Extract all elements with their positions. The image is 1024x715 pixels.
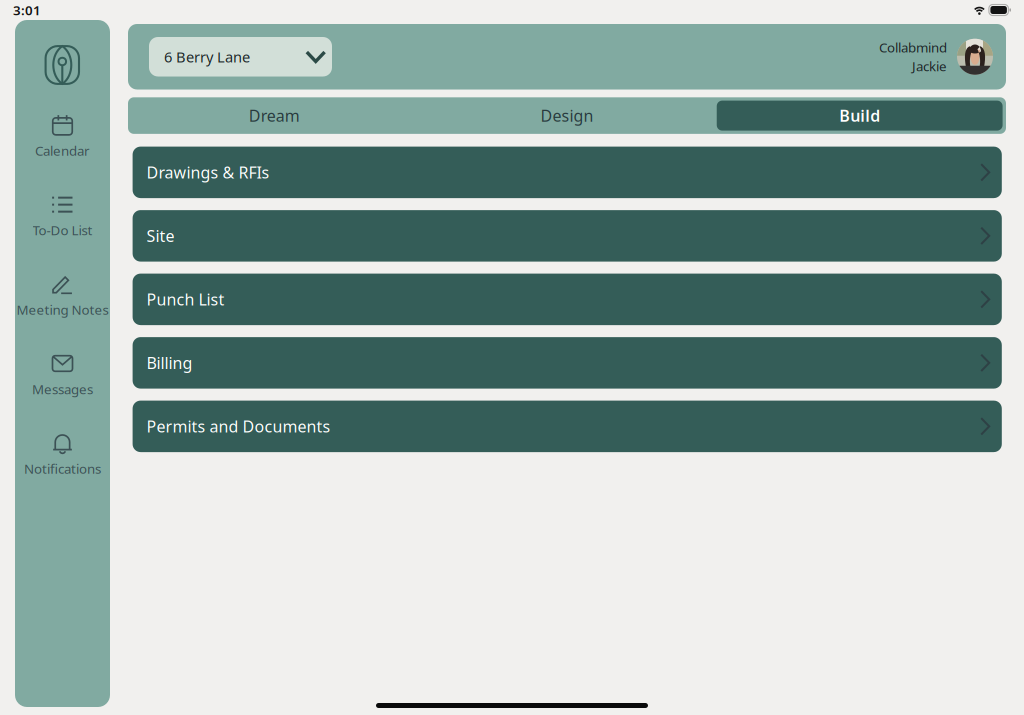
- button[interactable]: 6 Berry Lane: [149, 37, 332, 76]
- staticText: Design: [540, 105, 593, 126]
- button[interactable]: Permits and Documents: [133, 401, 1002, 452]
- button[interactable]: Collabmind: [879, 38, 993, 75]
- button[interactable]: Punch List: [133, 274, 1002, 325]
- staticText: Billing: [147, 352, 193, 373]
- button[interactable]: Design: [421, 97, 713, 134]
- button[interactable]: To-Do List: [15, 190, 110, 270]
- button[interactable]: Calendar: [15, 111, 110, 190]
- staticText: Build: [839, 105, 880, 126]
- staticText: Messages: [32, 380, 93, 398]
- staticText: Punch List: [147, 289, 225, 310]
- button[interactable]: Billing: [133, 337, 1002, 389]
- button[interactable]: Build: [713, 101, 1006, 131]
- staticText: Permits and Documents: [147, 416, 331, 437]
- button[interactable]: Messages: [15, 349, 110, 429]
- staticText: To-Do List: [32, 221, 92, 239]
- staticText: Collabmind: [879, 38, 947, 56]
- button[interactable]: Site: [133, 210, 1002, 262]
- button[interactable]: Dream: [128, 97, 421, 134]
- button[interactable]: Notifications: [15, 429, 110, 508]
- staticText: Site: [147, 225, 175, 246]
- staticText: 3:01: [13, 1, 41, 19]
- staticText: Calendar: [35, 142, 90, 159]
- button[interactable]: Meeting Notes: [15, 270, 110, 349]
- staticText: Dream: [249, 105, 300, 126]
- button[interactable]: Drawings & RFIs: [133, 147, 1002, 198]
- staticText: Jackie: [912, 57, 947, 75]
- staticText: Drawings & RFIs: [147, 162, 270, 183]
- staticText: Meeting Notes: [16, 301, 108, 318]
- staticText: Notifications: [24, 460, 101, 477]
- staticText: 6 Berry Lane: [164, 47, 250, 66]
